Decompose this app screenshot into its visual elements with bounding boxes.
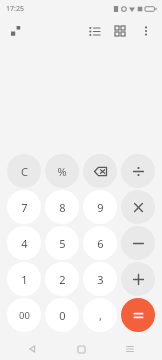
- button[interactable]: Equals: [121, 298, 155, 332]
- staticText: ,: [99, 308, 102, 323]
- staticText: %: [57, 164, 67, 179]
- button[interactable]: 1: [7, 262, 41, 296]
- staticText: 0: [59, 308, 66, 323]
- button[interactable]: More options: [135, 20, 157, 42]
- button[interactable]: %: [45, 154, 79, 188]
- button[interactable]: 2: [45, 262, 79, 296]
- staticText: 3: [97, 272, 104, 287]
- staticText: C: [21, 164, 28, 179]
- button[interactable]: Multiply: [121, 190, 155, 224]
- button[interactable]: Backspace: [83, 154, 117, 188]
- staticText: 5: [59, 236, 66, 251]
- button[interactable]: Minus: [121, 226, 155, 260]
- staticText: 4: [21, 236, 28, 251]
- staticText: 17:25: [6, 4, 24, 14]
- staticText: 2: [59, 272, 66, 287]
- staticText: 9: [97, 200, 104, 215]
- button[interactable]: Plus: [121, 262, 155, 296]
- button[interactable]: Scientific mode: [5, 20, 27, 42]
- button[interactable]: Back: [15, 338, 49, 360]
- button[interactable]: Divide: [121, 154, 155, 188]
- button[interactable]: C: [7, 154, 41, 188]
- button[interactable]: 8: [45, 190, 79, 224]
- button[interactable]: ,: [83, 298, 117, 332]
- button[interactable]: 3: [83, 262, 117, 296]
- button[interactable]: 4: [7, 226, 41, 260]
- staticText: 00: [19, 309, 30, 322]
- button[interactable]: Apps grid: [109, 20, 131, 42]
- button[interactable]: Home: [64, 338, 98, 360]
- staticText: 7: [21, 200, 28, 215]
- button[interactable]: Unit converter: [83, 20, 105, 42]
- button[interactable]: 5: [45, 226, 79, 260]
- button[interactable]: 6: [83, 226, 117, 260]
- button[interactable]: 00: [7, 298, 41, 332]
- staticText: 8: [59, 200, 66, 215]
- button[interactable]: 7: [7, 190, 41, 224]
- button[interactable]: 9: [83, 190, 117, 224]
- staticText: 1: [21, 272, 28, 287]
- button[interactable]: 0: [45, 298, 79, 332]
- staticText: 6: [97, 236, 104, 251]
- button[interactable]: Recent apps: [113, 338, 147, 360]
